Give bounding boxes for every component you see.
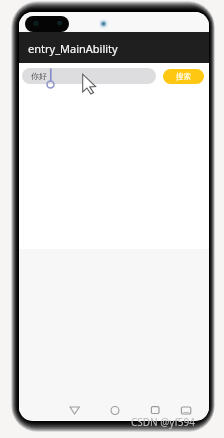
staticText: 搜索 [176,72,191,81]
button[interactable]: entry_MainAbility [19,32,209,63]
button[interactable]: 搜索 [163,69,204,84]
staticText: 你好 [31,71,47,81]
button[interactable]: 你好 [22,68,156,84]
staticText: CSDN @yf594 [131,415,195,429]
staticText: entry_MainAbility [28,41,118,56]
